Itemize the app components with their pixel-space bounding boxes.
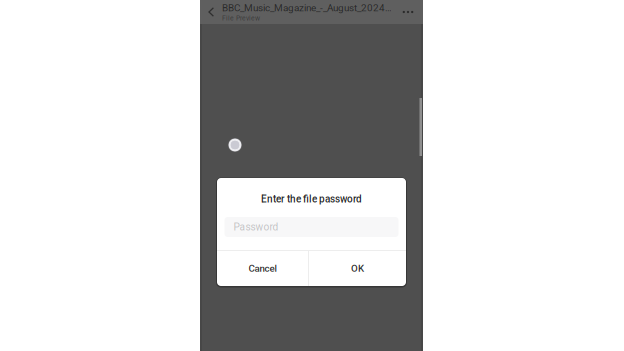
staticText: File Preview <box>222 14 260 22</box>
staticText: Cancel <box>248 263 276 274</box>
button[interactable]: More options <box>398 0 418 24</box>
button[interactable]: Cancel <box>217 251 308 286</box>
staticText: Password <box>233 221 278 233</box>
button[interactable]: Back <box>203 0 220 24</box>
button[interactable]: OK <box>309 251 406 286</box>
staticText: BBC_Music_Magazine_-_August_2024… <box>222 2 392 13</box>
staticText: Enter the file password <box>261 193 362 205</box>
staticText: OK <box>351 263 364 274</box>
